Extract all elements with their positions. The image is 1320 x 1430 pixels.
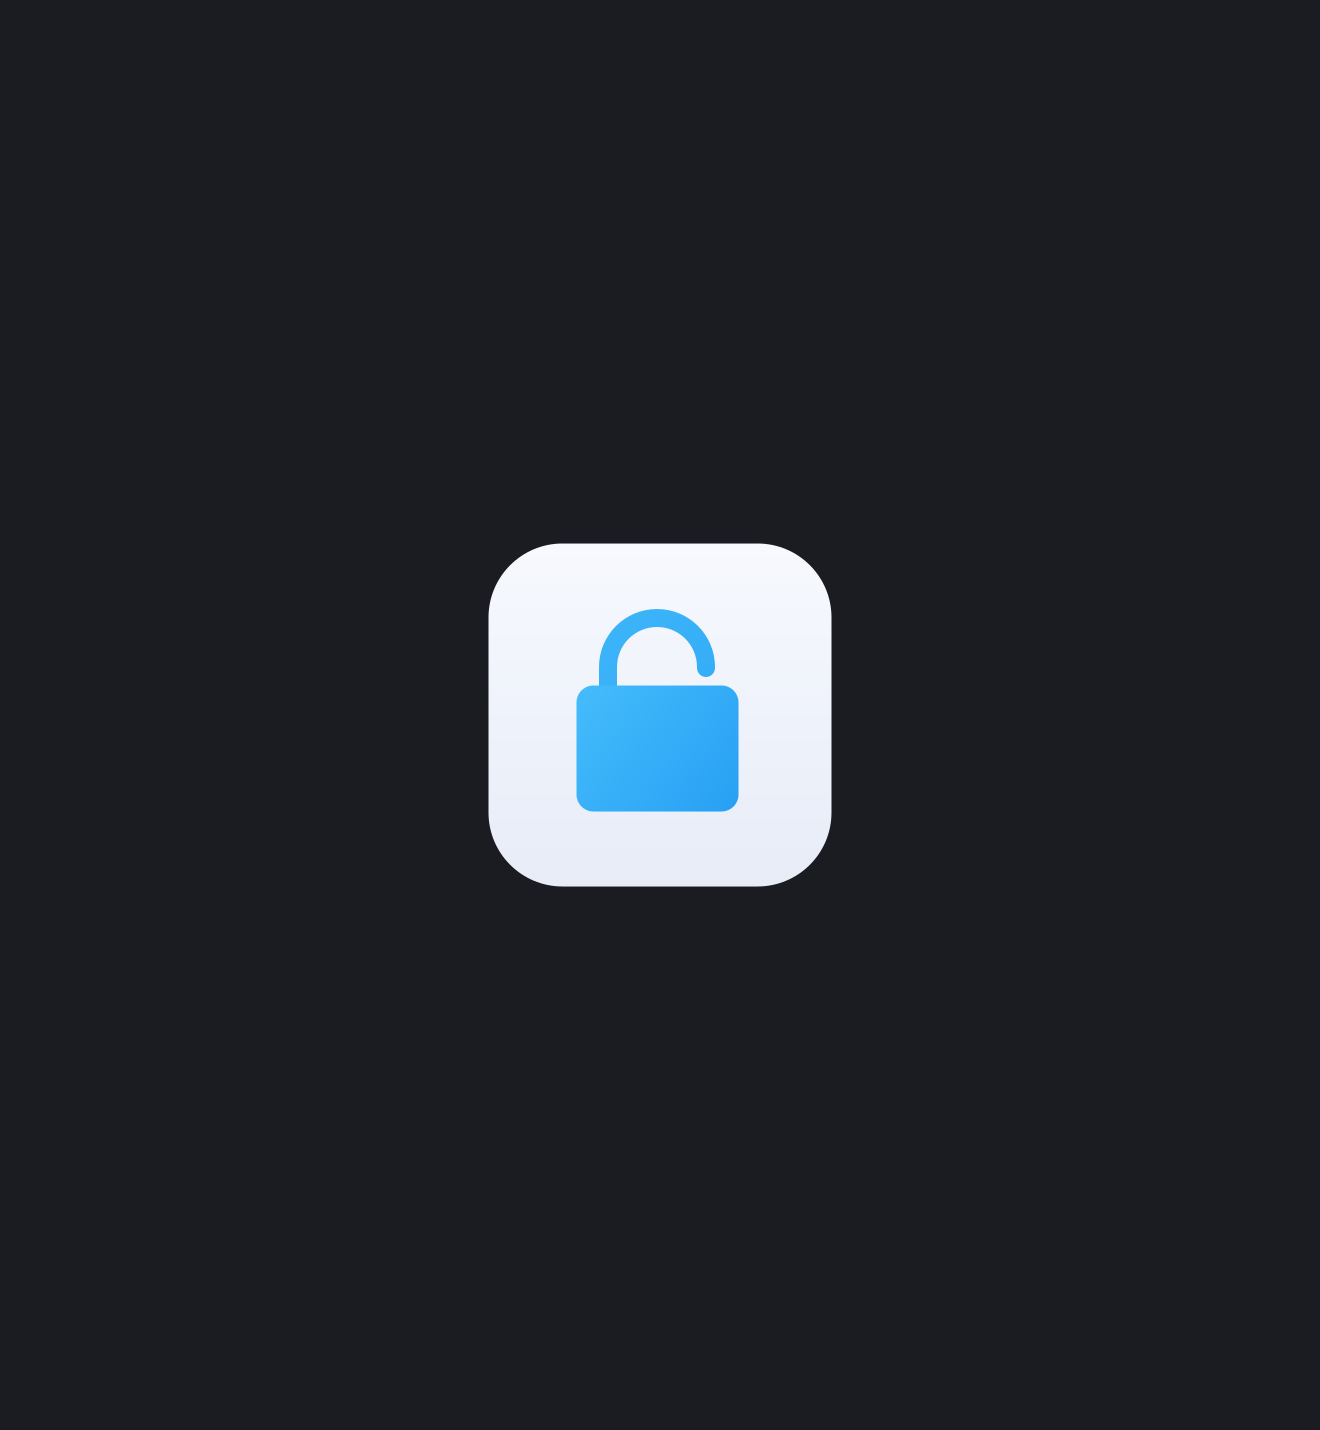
button[interactable]: Unlock (488, 543, 831, 886)
